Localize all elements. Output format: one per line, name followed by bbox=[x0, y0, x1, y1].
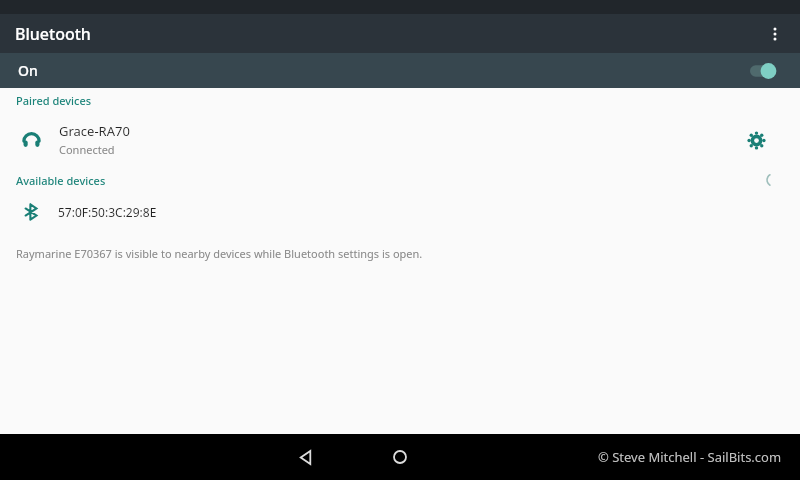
button[interactable]: Back bbox=[283, 435, 327, 479]
staticText: Raymarine E70367 is visible to nearby de… bbox=[16, 246, 423, 261]
staticText: Paired devices bbox=[16, 93, 92, 108]
button[interactable]: On bbox=[0, 53, 800, 88]
button[interactable]: Home bbox=[378, 435, 422, 479]
staticText: Connected bbox=[59, 142, 115, 157]
button[interactable]: Grace-RA70 bbox=[0, 113, 800, 166]
button[interactable]: 57:0F:50:3C:29:8E bbox=[0, 194, 800, 230]
button[interactable]: More options bbox=[755, 14, 794, 53]
other: Bluetooth on bbox=[750, 60, 780, 82]
staticText: Grace-RA70 bbox=[59, 122, 130, 140]
staticText: Bluetooth bbox=[15, 23, 91, 45]
staticText: Available devices bbox=[16, 173, 106, 188]
staticText: On bbox=[18, 61, 38, 80]
staticText: 57:0F:50:3C:29:8E bbox=[58, 204, 157, 220]
button[interactable]: Device settings bbox=[740, 124, 772, 156]
staticText: © Steve Mitchell - SailBits.com bbox=[598, 448, 782, 466]
